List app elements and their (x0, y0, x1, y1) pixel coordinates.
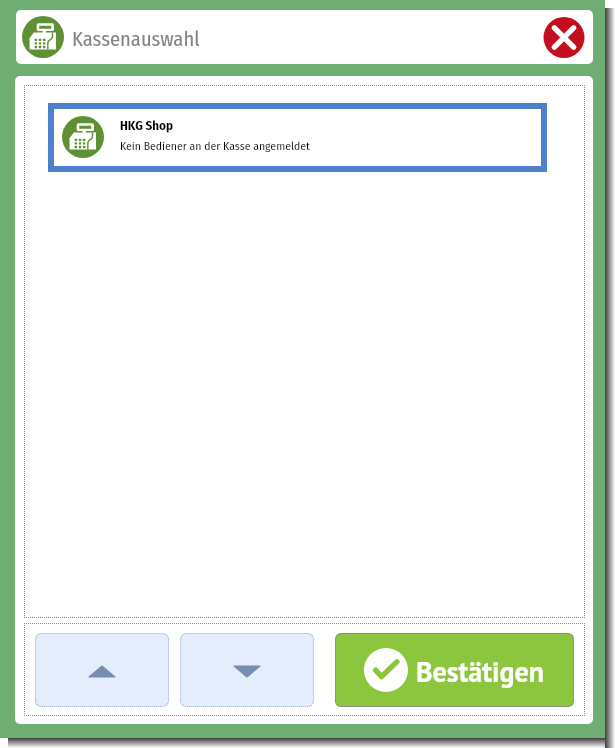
button[interactable]: HKG Shop (54, 109, 541, 166)
button[interactable]: Bestätigen (335, 633, 574, 707)
button[interactable]: Nach oben (35, 633, 169, 707)
staticText: Bestätigen (416, 653, 545, 689)
staticText: Kassenauswahl (72, 27, 200, 52)
staticText: HKG Shop (120, 118, 174, 134)
staticText: Kein Bediener an der Kasse angemeldet (120, 139, 310, 153)
button[interactable]: Schliessen (542, 15, 586, 59)
button[interactable]: Nach unten (180, 633, 314, 707)
